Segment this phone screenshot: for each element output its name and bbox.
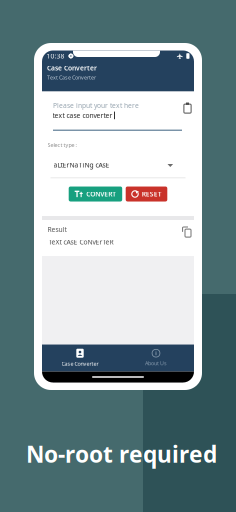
- button[interactable]: Copy result: [180, 224, 194, 239]
- staticText: 10:38: [46, 52, 64, 60]
- staticText: Select type :: [47, 141, 76, 149]
- button[interactable]: Paste from clipboard: [180, 100, 194, 115]
- button[interactable]: Case Converter: [42, 344, 118, 371]
- staticText: TeXt cAsE CoNvErTeR: [48, 237, 113, 246]
- staticText: Text Case Converter: [47, 74, 96, 81]
- staticText: aLtErNaTiNg cAsE: [53, 160, 109, 169]
- staticText: CONVERT: [86, 190, 116, 198]
- staticText: Result: [47, 225, 66, 234]
- staticText: text case converter: [52, 111, 112, 120]
- staticText: RESET: [142, 190, 162, 198]
- button[interactable]: aLtErNaTiNg cAsE: [50, 154, 185, 176]
- staticText: About Us: [145, 360, 167, 367]
- button[interactable]: RESET: [126, 186, 167, 201]
- staticText: Case Converter: [47, 63, 97, 72]
- button[interactable]: About Us: [118, 344, 194, 371]
- staticText: No-root required: [26, 439, 217, 469]
- staticText: Case Converter: [61, 360, 98, 367]
- button[interactable]: CONVERT: [69, 186, 122, 201]
- staticText: Please input your text here: [53, 101, 139, 110]
